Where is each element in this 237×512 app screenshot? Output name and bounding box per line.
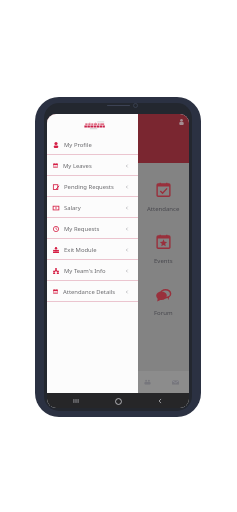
staticText: My Team's Info: [64, 267, 106, 275]
staticText: Attendance: [147, 205, 180, 213]
button[interactable]: My Requests: [47, 218, 138, 239]
staticText: Events: [154, 257, 173, 265]
button[interactable]: My Profile: [47, 134, 138, 155]
staticText: My Profile: [64, 141, 92, 149]
staticText: My Leaves: [63, 162, 92, 170]
button[interactable]: Salary: [47, 197, 138, 218]
button[interactable]: Contacts: [133, 371, 161, 393]
button[interactable]: Messages: [161, 371, 189, 393]
button[interactable]: Exit Module: [47, 239, 138, 260]
button[interactable]: Events: [154, 234, 173, 265]
staticText: Salary: [64, 204, 81, 212]
staticText: Exit Module: [64, 246, 97, 254]
button[interactable]: My Leaves: [47, 155, 138, 176]
staticText: Attendance Details: [63, 288, 116, 296]
button[interactable]: Attendance: [147, 182, 180, 213]
button[interactable]: Pending Requests: [47, 176, 138, 197]
button[interactable]: Back: [153, 394, 167, 408]
button[interactable]: Profile: [176, 116, 187, 127]
staticText: My Requests: [64, 225, 100, 233]
button[interactable]: Recents: [69, 394, 83, 408]
button[interactable]: Attendance Details: [47, 281, 138, 302]
button[interactable]: My Team's Info: [47, 260, 138, 281]
staticText: Pending Requests: [64, 183, 114, 191]
button[interactable]: Home: [111, 394, 125, 408]
button[interactable]: Forum: [154, 289, 173, 317]
staticText: Forum: [154, 309, 173, 317]
